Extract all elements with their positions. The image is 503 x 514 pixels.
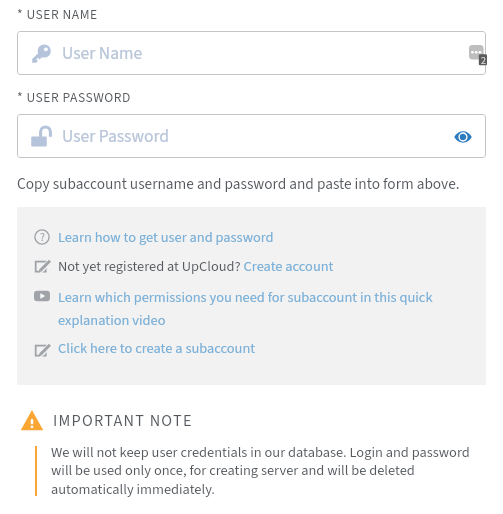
button[interactable]: Not yet registered at UpCloud? Create ac…	[17, 256, 486, 277]
staticText: ?	[40, 229, 45, 245]
staticText: * USER NAME	[17, 5, 98, 24]
button[interactable]: Click here to create a subaccount	[17, 338, 486, 359]
staticText: Learn how to get user and password	[58, 227, 274, 248]
staticText: User Name	[62, 41, 143, 66]
staticText: Learn which permissions you need for sub…	[58, 287, 450, 330]
staticText: Click here to create a subaccount	[58, 338, 256, 359]
button[interactable]: Learn which permissions you need for sub…	[17, 287, 486, 330]
staticText: We will not keep user credentials in our…	[51, 442, 475, 500]
button[interactable]: ?	[17, 227, 486, 248]
button[interactable]: Show password	[452, 126, 474, 148]
staticText: User Password	[62, 124, 170, 149]
staticText: Copy subaccount username and password an…	[17, 173, 460, 195]
button[interactable]: User Name	[17, 31, 486, 75]
staticText: * USER PASSWORD	[17, 88, 131, 107]
staticText: 2	[481, 54, 486, 68]
button[interactable]: Autofill saved passwords	[469, 45, 487, 66]
staticText: Not yet registered at UpCloud? Create ac…	[58, 256, 334, 277]
staticText: IMPORTANT NOTE	[53, 409, 193, 432]
button[interactable]: User Password	[17, 114, 486, 158]
